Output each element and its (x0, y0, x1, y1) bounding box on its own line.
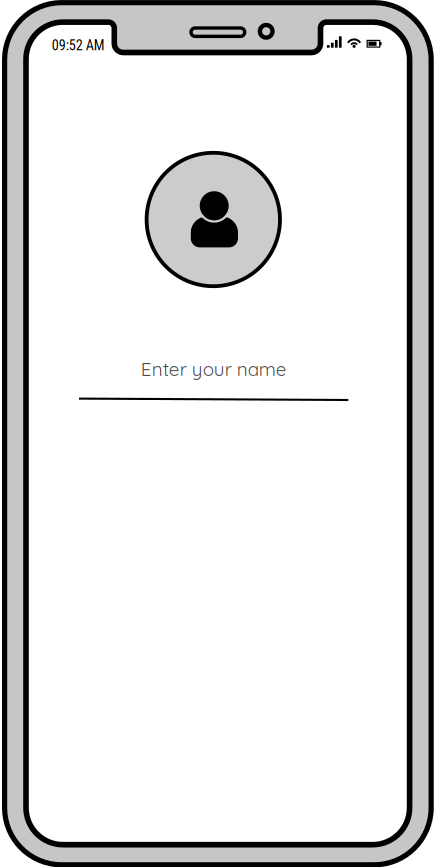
staticText: Enter your name (141, 357, 287, 381)
button[interactable]: Enter your name (79, 349, 348, 405)
button[interactable]: Choose profile photo (147, 153, 280, 286)
staticText: 09:52 AM (52, 37, 105, 54)
